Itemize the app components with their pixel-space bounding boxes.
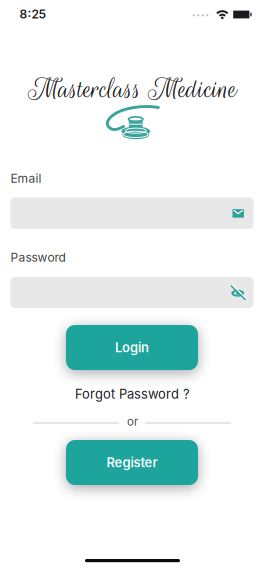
staticText: or <box>127 415 138 429</box>
staticText: Forgot Password ? <box>75 386 190 402</box>
staticText: Email <box>10 171 41 186</box>
staticText: Masterclass Medicine <box>28 71 237 107</box>
staticText: Register <box>106 455 157 470</box>
button[interactable]: Login <box>66 325 198 370</box>
staticText: 8:25 <box>19 7 46 21</box>
button[interactable]: Show password <box>230 286 246 301</box>
button[interactable]: Register <box>66 440 198 485</box>
button[interactable]: Forgot Password ? <box>75 386 190 402</box>
staticText: Login <box>115 340 149 355</box>
staticText: Password <box>10 250 65 265</box>
